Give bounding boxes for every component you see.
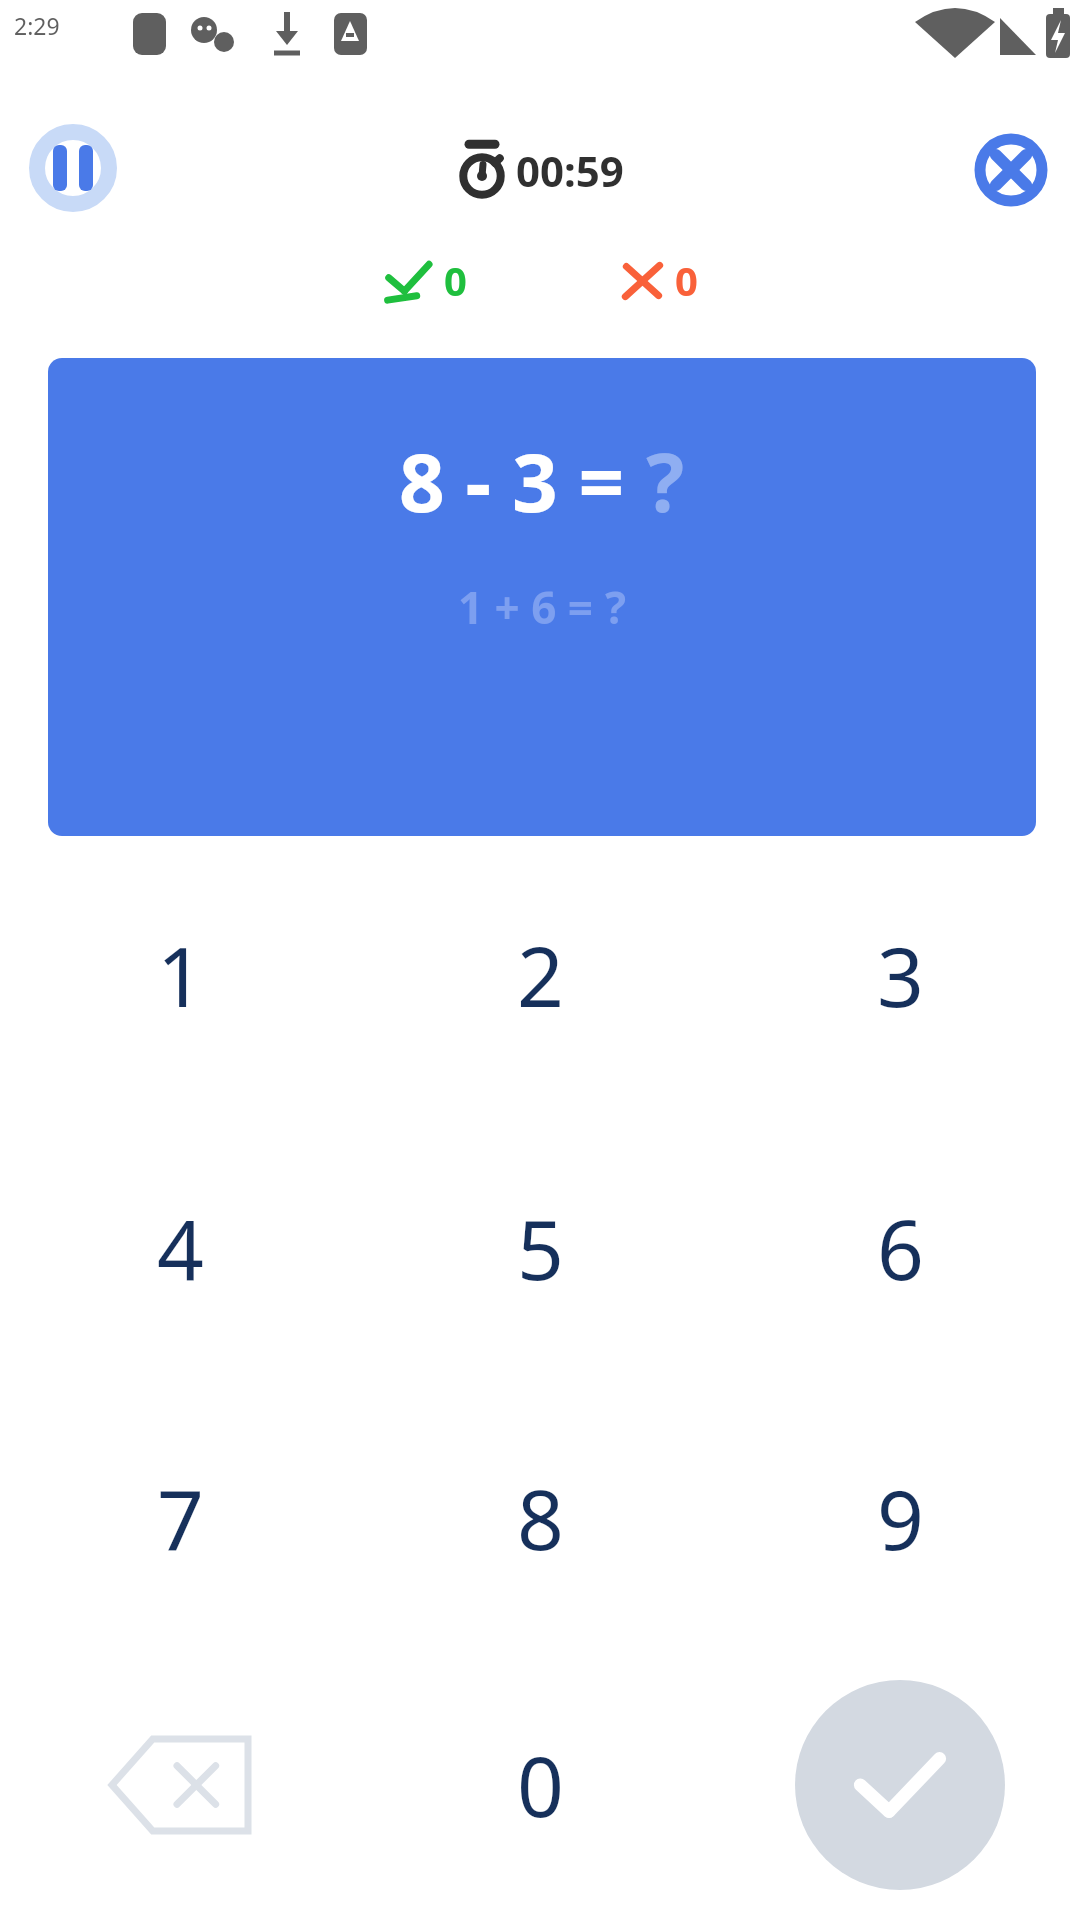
staticText: 9 [877,1462,924,1574]
button[interactable]: 8 [390,1393,690,1643]
staticText: 6 [877,1192,924,1304]
button[interactable]: 3 [750,850,1050,1100]
button[interactable]: 1 [30,850,330,1100]
button[interactable]: 0 [382,252,467,308]
staticText: 0 [517,1729,564,1841]
button[interactable]: 7 [30,1393,330,1643]
button[interactable]: 4 [30,1123,330,1373]
staticText: 1 [157,919,204,1031]
button[interactable]: 5 [390,1123,690,1373]
staticText: ? [605,577,626,637]
button[interactable]: 0 [390,1660,690,1910]
button[interactable]: Close [975,134,1047,206]
button[interactable]: 8 - 3 = [48,358,1036,836]
button[interactable]: Pause [33,128,113,208]
staticText: 1 + 6 = [458,577,605,637]
button[interactable]: 0 [617,253,698,307]
staticText: 2:29 [14,10,60,41]
button[interactable]: Backspace [30,1660,330,1910]
button[interactable]: 9 [750,1393,1050,1643]
button[interactable]: 2 [390,850,690,1100]
button[interactable]: 6 [750,1123,1050,1373]
staticText: 00:59 [516,142,624,199]
staticText: 8 - 3 = [399,426,646,535]
staticText: 3 [877,919,924,1031]
staticText: 2 [517,919,564,1031]
staticText: 5 [517,1192,564,1304]
staticText: 0 [675,253,698,307]
button[interactable]: Confirm answer [795,1680,1005,1890]
staticText: 0 [444,253,467,307]
staticText: ? [646,426,685,535]
staticText: 4 [157,1192,204,1304]
staticText: 8 [517,1462,564,1574]
staticText: 7 [157,1462,204,1574]
